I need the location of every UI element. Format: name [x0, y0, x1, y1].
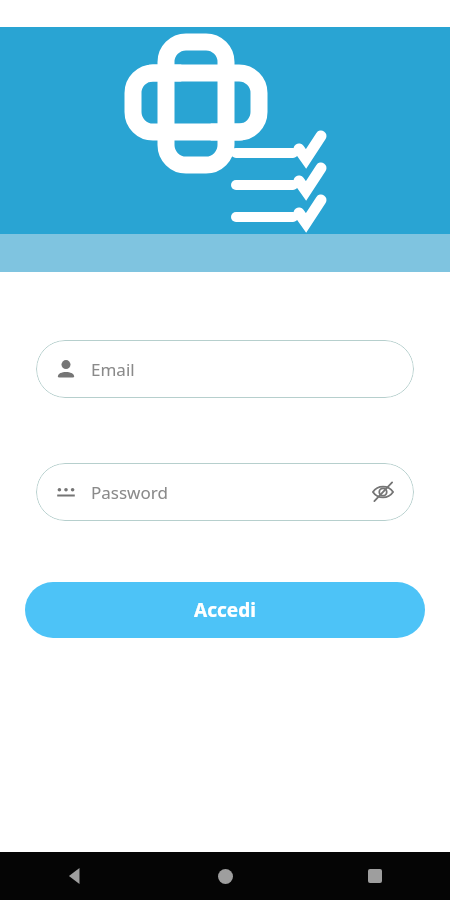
staticText: Accedi — [194, 597, 256, 623]
button[interactable]: Accedi — [25, 582, 425, 638]
button[interactable]: Toggle password visibility — [369, 478, 397, 506]
button[interactable]: Email — [36, 340, 414, 398]
button[interactable]: Home — [150, 852, 300, 900]
staticText: Email — [91, 358, 397, 381]
button[interactable]: Back — [0, 852, 150, 900]
button[interactable]: Recent apps — [300, 852, 450, 900]
button[interactable]: Password — [36, 463, 414, 521]
staticText: Password — [91, 481, 369, 504]
